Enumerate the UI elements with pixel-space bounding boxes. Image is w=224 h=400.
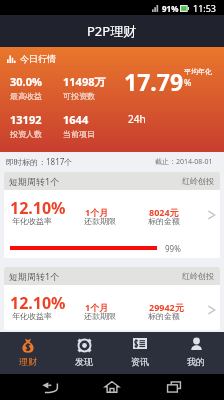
- staticText: 当前项目: [63, 129, 95, 139]
- staticText: 年化收益率: [12, 216, 52, 226]
- staticText: 理财: [19, 356, 37, 367]
- staticText: 8024元: [149, 206, 179, 218]
- staticText: 12.10%: [10, 292, 66, 314]
- staticText: 99%: [165, 243, 181, 254]
- staticText: 11:53: [193, 2, 217, 14]
- button[interactable]: 短期周转1个: [4, 172, 220, 258]
- button[interactable]: 短期周转1个: [4, 267, 220, 330]
- button[interactable]: Recent apps: [160, 374, 188, 400]
- staticText: 我的: [187, 356, 205, 367]
- staticText: 1644: [63, 112, 89, 127]
- button[interactable]: 理财: [0, 332, 56, 374]
- staticText: 1个月: [85, 206, 109, 218]
- button[interactable]: 发现: [56, 332, 112, 374]
- button[interactable]: 我的: [168, 332, 224, 374]
- staticText: 91%: [162, 3, 179, 14]
- staticText: 资讯: [131, 356, 149, 367]
- staticText: 还款期限: [84, 311, 116, 321]
- staticText: 29942元: [149, 301, 184, 313]
- staticText: 短期周转1个: [9, 270, 60, 282]
- staticText: 30.0%: [10, 74, 42, 89]
- button[interactable]: Home: [98, 374, 126, 400]
- staticText: 发现: [75, 356, 93, 367]
- staticText: 红岭创投: [182, 271, 214, 281]
- staticText: 年化收益率: [12, 311, 52, 321]
- staticText: 24h: [128, 112, 146, 126]
- staticText: 12.10%: [10, 197, 66, 219]
- staticText: 平均年化: [184, 67, 212, 76]
- staticText: P2P理财: [87, 22, 137, 40]
- staticText: 红岭创投: [182, 176, 214, 186]
- staticText: 截止：2014-08-01: [155, 157, 213, 167]
- button[interactable]: 资讯: [112, 332, 168, 374]
- staticText: 最高收益: [10, 91, 42, 101]
- staticText: %: [184, 76, 192, 88]
- staticText: 短期周转1个: [9, 175, 60, 187]
- staticText: 13192: [10, 112, 42, 127]
- staticText: 11498万: [63, 74, 106, 89]
- staticText: 1个月: [85, 301, 109, 313]
- staticText: 即时标的：1817个: [6, 156, 73, 167]
- staticText: 17.79: [124, 66, 184, 97]
- staticText: 标的金额: [148, 311, 180, 321]
- staticText: 今日行情: [20, 53, 56, 64]
- staticText: 投资人数: [10, 129, 42, 139]
- button[interactable]: Back: [36, 374, 64, 400]
- staticText: 可投资数: [63, 91, 95, 101]
- staticText: 标的金额: [148, 216, 180, 226]
- staticText: 还款期限: [84, 216, 116, 226]
